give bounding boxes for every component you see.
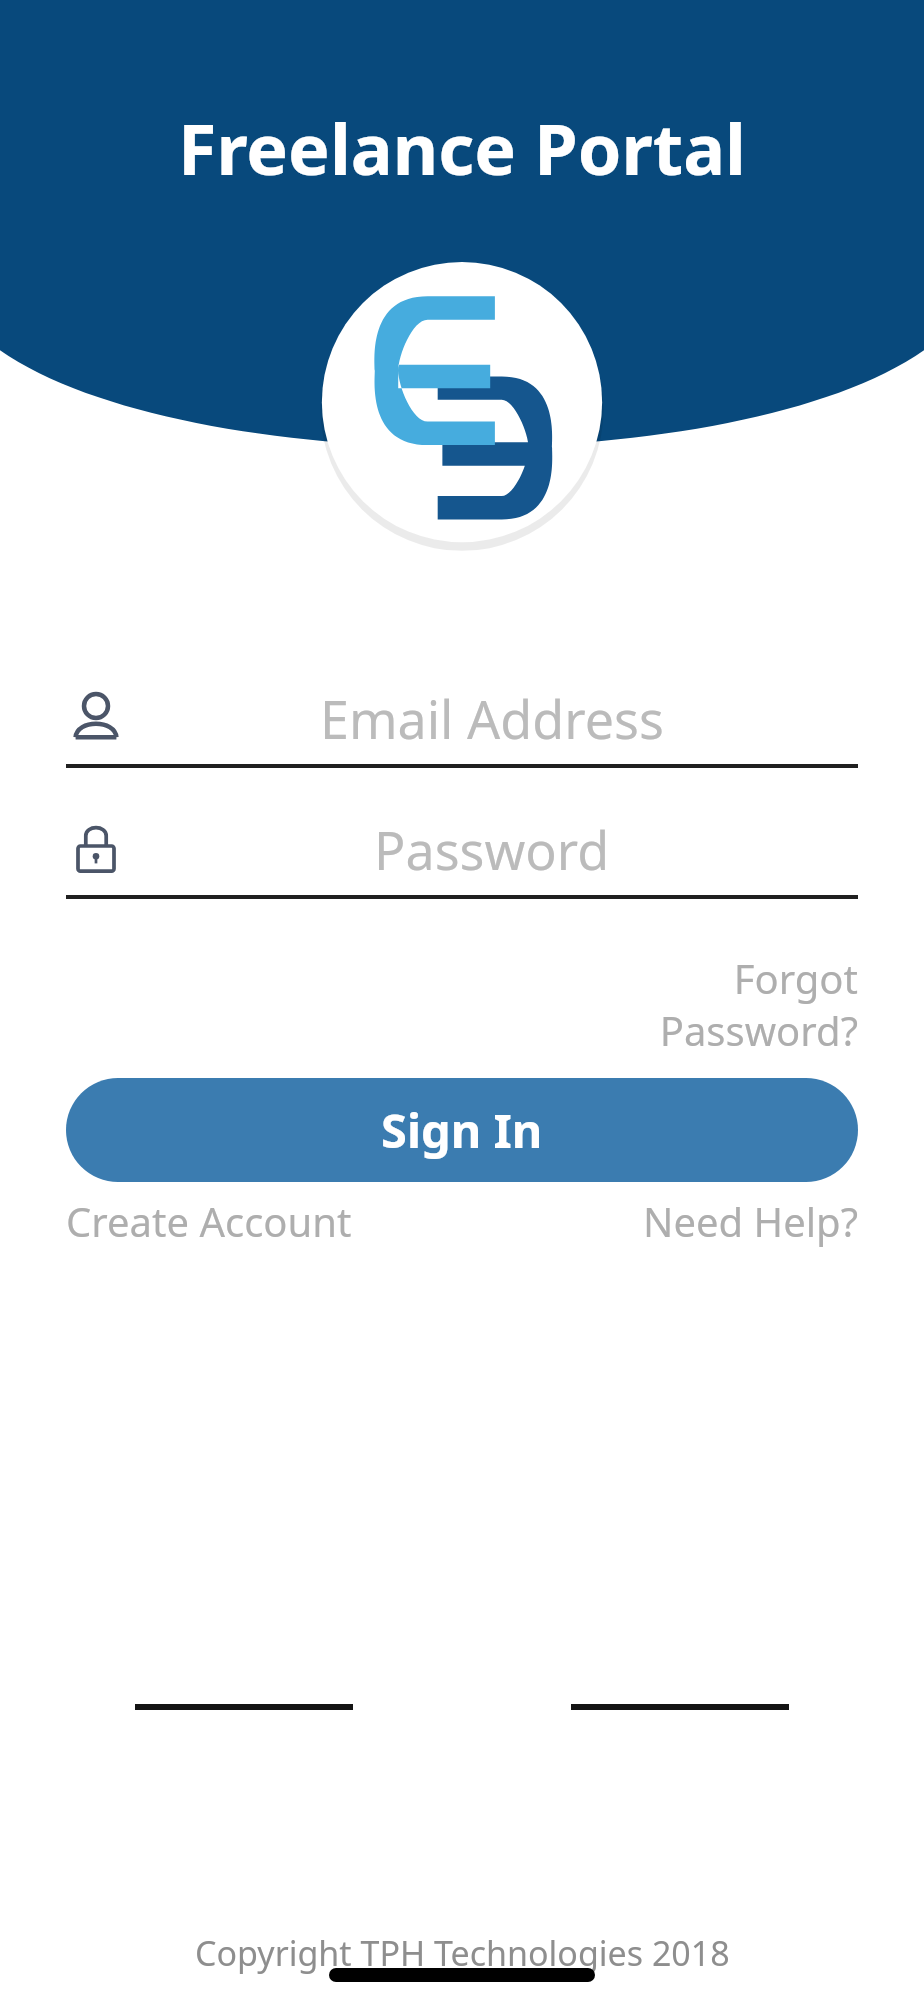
- staticText: Email Address: [320, 683, 664, 754]
- button[interactable]: Email Address: [66, 672, 858, 768]
- staticText: Freelance Portal: [178, 100, 746, 195]
- staticText: Password: [374, 814, 610, 885]
- staticText: Copyright TPH Technologies 2018: [195, 1930, 730, 1976]
- button[interactable]: Sign In: [66, 1078, 858, 1182]
- staticText: Sign In: [381, 1098, 543, 1162]
- button[interactable]: Need Help?: [643, 1194, 858, 1248]
- staticText: Forgot Password?: [659, 951, 858, 1058]
- button[interactable]: Forgot Password?: [66, 951, 858, 1058]
- button[interactable]: Password: [66, 803, 858, 899]
- button[interactable]: Create Account: [66, 1194, 352, 1248]
